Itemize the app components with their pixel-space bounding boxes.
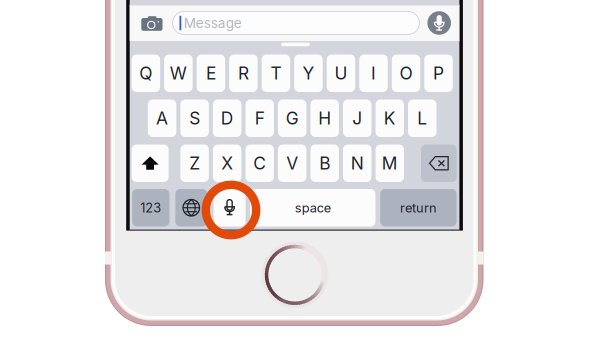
staticText: S [189, 108, 200, 129]
button[interactable]: S [0, 0, 600, 350]
button[interactable]: U [0, 0, 600, 350]
staticText: M [382, 153, 398, 174]
staticText: R [238, 63, 249, 84]
staticText: 123 [140, 200, 161, 215]
button[interactable]: W [0, 0, 600, 350]
staticText: G [286, 108, 299, 129]
button[interactable]: B [0, 0, 600, 350]
staticText: E [206, 63, 216, 84]
staticText: D [221, 108, 234, 129]
button[interactable]: T [0, 0, 600, 350]
button[interactable]: Next keyboard [0, 0, 600, 350]
button[interactable]: E [0, 0, 600, 350]
button[interactable]: Q [0, 0, 600, 350]
staticText: A [156, 108, 168, 129]
staticText: P [433, 63, 444, 84]
button[interactable]: V [0, 0, 600, 350]
button[interactable]: Dictation [0, 0, 600, 350]
button[interactable]: 123 [0, 0, 600, 350]
staticText: Z [189, 153, 200, 174]
staticText: F [255, 108, 265, 129]
button[interactable]: A [0, 0, 600, 350]
button[interactable]: space [0, 0, 600, 350]
staticText: X [221, 153, 233, 174]
staticText: O [399, 63, 412, 84]
button[interactable]: L [0, 0, 600, 350]
staticText: I [371, 63, 376, 84]
button[interactable]: Dictate [426, 9, 453, 36]
staticText: N [351, 153, 364, 174]
button[interactable]: H [0, 0, 600, 350]
button[interactable]: G [0, 0, 600, 350]
button[interactable]: O [0, 0, 600, 350]
staticText: K [384, 108, 396, 129]
button[interactable]: return [0, 0, 600, 350]
button[interactable]: N [0, 0, 600, 350]
button[interactable]: X [0, 0, 600, 350]
staticText: Message [184, 15, 242, 31]
staticText: return [400, 200, 437, 215]
button[interactable]: J [0, 0, 600, 350]
button[interactable]: Y [0, 0, 600, 350]
button[interactable]: F [0, 0, 600, 350]
button[interactable]: R [0, 0, 600, 350]
staticText: W [170, 63, 187, 84]
button[interactable]: D [0, 0, 600, 350]
button[interactable]: Shift [0, 0, 600, 350]
button[interactable]: K [0, 0, 600, 350]
button[interactable]: P [0, 0, 600, 350]
staticText: B [319, 153, 330, 174]
staticText: C [253, 153, 266, 174]
button[interactable]: I [0, 0, 600, 350]
button[interactable]: Z [0, 0, 600, 350]
staticText: Y [302, 63, 314, 84]
staticText: T [270, 63, 281, 84]
staticText: space [295, 200, 331, 215]
staticText: J [352, 108, 362, 129]
button[interactable]: Delete [0, 0, 600, 350]
button[interactable]: C [0, 0, 600, 350]
staticText: V [286, 153, 298, 174]
staticText: U [334, 63, 347, 84]
button[interactable]: M [0, 0, 600, 350]
staticText: H [318, 108, 331, 129]
staticText: L [417, 108, 427, 129]
staticText: Q [139, 63, 152, 84]
button[interactable]: Camera [137, 9, 167, 37]
